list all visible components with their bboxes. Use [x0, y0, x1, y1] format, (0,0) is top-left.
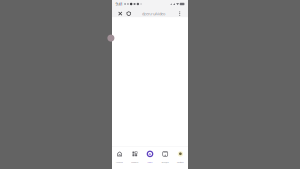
staticText: Главная: [116, 161, 123, 163]
staticText: dzen.ru/video: [142, 11, 165, 16]
button[interactable]: Close: [116, 9, 124, 18]
staticText: Профиль: [177, 161, 184, 163]
button[interactable]: Site security: [124, 9, 133, 18]
button[interactable]: Алиса: [142, 147, 158, 169]
button[interactable]: Сервисы: [127, 147, 142, 169]
button[interactable]: dzen.ru/video: [142, 9, 165, 18]
staticText: Вкладки: [162, 161, 169, 163]
button[interactable]: Главная: [112, 147, 127, 169]
button[interactable]: Вкладки: [158, 147, 173, 169]
button[interactable]: Профиль: [173, 147, 188, 169]
staticText: Сервисы: [131, 161, 138, 163]
staticText: 9:41: [116, 1, 123, 7]
button[interactable]: More options: [175, 9, 184, 18]
staticText: Алиса: [147, 161, 152, 163]
